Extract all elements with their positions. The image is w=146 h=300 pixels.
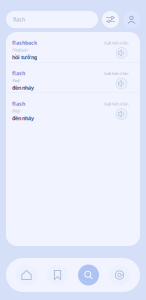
staticText: /flæʃ/ (12, 78, 20, 83)
staticText: flash (12, 70, 25, 77)
staticText: flash (12, 100, 25, 107)
button[interactable]: Settings (109, 264, 130, 285)
staticText: Xuất hiện 4 lần (104, 40, 128, 46)
staticText: /flæʃ/ (12, 108, 20, 114)
button[interactable]: flash (6, 62, 140, 92)
staticText: đèn nháy (12, 115, 34, 122)
staticText: flash (13, 16, 25, 23)
staticText: đèn nháy (12, 84, 34, 91)
button[interactable]: flashback (6, 32, 140, 62)
button[interactable]: Home (16, 264, 37, 285)
button[interactable]: Saved (47, 264, 68, 285)
button[interactable]: flash (6, 93, 140, 123)
staticText: hồi tưởng (12, 54, 37, 61)
staticText: Xuất hiện 4 lần (104, 71, 128, 76)
button[interactable]: Search (78, 264, 99, 285)
staticText: Xuất hiện 4 lần (104, 101, 128, 107)
staticText: /ˈflæʃbæk/ (12, 47, 28, 53)
button[interactable]: Profile (123, 11, 140, 28)
button[interactable]: Filters (102, 11, 119, 28)
staticText: flashback (12, 39, 37, 46)
